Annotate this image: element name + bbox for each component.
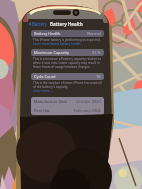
- button[interactable]: First Use: [31, 106, 104, 115]
- staticText: Battery: [32, 21, 48, 27]
- button[interactable]: Cycle Count: [31, 73, 104, 80]
- staticText: This is the number of times iPhone has u…: [33, 81, 102, 89]
- staticText: 18: [96, 74, 101, 79]
- button[interactable]: Manufacture Date: [31, 97, 104, 106]
- staticText: This iPhone battery is performing as exp…: [33, 38, 102, 42]
- staticText: 92 %: [92, 50, 101, 55]
- staticText: October 2023: [76, 99, 101, 104]
- button[interactable]: Battery Health: [31, 30, 104, 37]
- button[interactable]: Learn more...: [33, 89, 53, 93]
- staticText: Battery Health: [50, 21, 83, 27]
- staticText: Normal: [87, 31, 101, 36]
- button[interactable]: Maximum Capacity: [31, 49, 104, 56]
- staticText: February 2024: [74, 108, 101, 113]
- staticText: Battery Health: [34, 31, 61, 36]
- staticText: Maximum Capacity: [34, 50, 69, 55]
- staticText: First Use: [34, 108, 50, 113]
- button[interactable]: Learn more about battery health...: [33, 42, 83, 46]
- button[interactable]: Back to Battery: [28, 19, 48, 29]
- staticText: Manufacture Date: [34, 99, 68, 104]
- staticText: This is a measure of battery capacity re…: [33, 57, 102, 69]
- staticText: Cycle Count: [34, 74, 56, 79]
